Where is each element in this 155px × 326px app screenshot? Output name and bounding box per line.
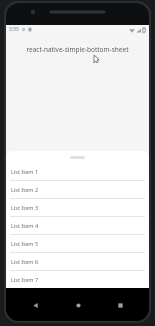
staticText: List Item 6 bbox=[11, 258, 39, 265]
staticText: List Item 7 bbox=[11, 276, 39, 283]
staticText: List Item 4 bbox=[11, 222, 39, 229]
staticText: List Item 2 bbox=[11, 186, 39, 193]
staticText: react-native-simple-bottom-sheet bbox=[6, 45, 149, 54]
button[interactable]: List Item 1 bbox=[6, 163, 149, 181]
button[interactable]: Back bbox=[22, 294, 48, 316]
staticText: List Item 3 bbox=[11, 204, 39, 211]
button[interactable]: List Item 5 bbox=[6, 235, 149, 253]
button[interactable] bbox=[6, 151, 149, 163]
staticText: List Item 1 bbox=[11, 168, 39, 175]
button[interactable]: Recent apps bbox=[107, 294, 133, 316]
button[interactable]: List Item 3 bbox=[6, 199, 149, 217]
button[interactable]: List Item 4 bbox=[6, 217, 149, 235]
button[interactable]: List Item 2 bbox=[6, 181, 149, 199]
button[interactable]: List Item 6 bbox=[6, 253, 149, 271]
button[interactable]: Home bbox=[65, 294, 91, 316]
staticText: List Item 5 bbox=[11, 240, 39, 247]
staticText: 3:55 bbox=[9, 26, 19, 33]
button[interactable]: List Item 7 bbox=[6, 271, 149, 288]
